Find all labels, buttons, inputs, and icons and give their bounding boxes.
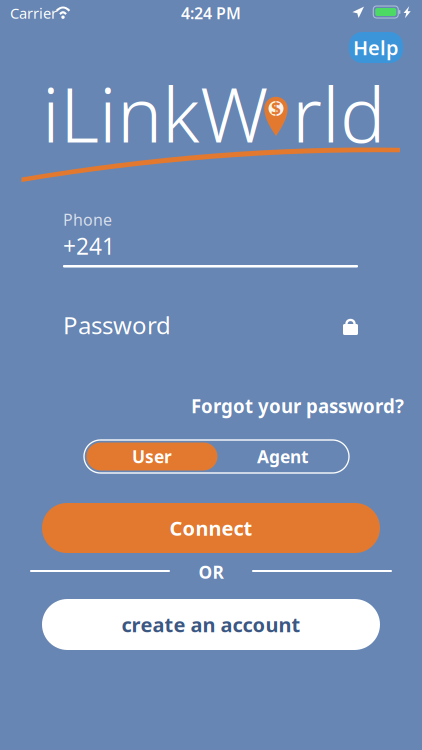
staticText: Connect [169,515,252,541]
button[interactable]: Agent [219,442,347,470]
staticText: +241 [63,231,115,261]
staticText: Password [63,309,171,341]
button[interactable]: User [86,442,217,470]
staticText: Forgot your password? [191,394,404,418]
staticText: rld [292,62,386,163]
staticText: User [132,445,172,468]
staticText: $ [271,97,281,120]
button[interactable]: create an account [42,599,380,650]
staticText: Agent [257,445,309,468]
button[interactable]: Connect [42,503,380,553]
staticText: Carrier [10,3,57,23]
staticText: iLinkW [42,62,268,163]
staticText: 4:24 PM [181,2,241,24]
staticText: OR [198,560,223,583]
button[interactable]: Help [349,32,403,63]
staticText: create an account [121,611,300,638]
button[interactable]: Forgot your password? [191,392,404,420]
staticText: Help [353,34,399,61]
staticText: Phone [63,209,112,230]
